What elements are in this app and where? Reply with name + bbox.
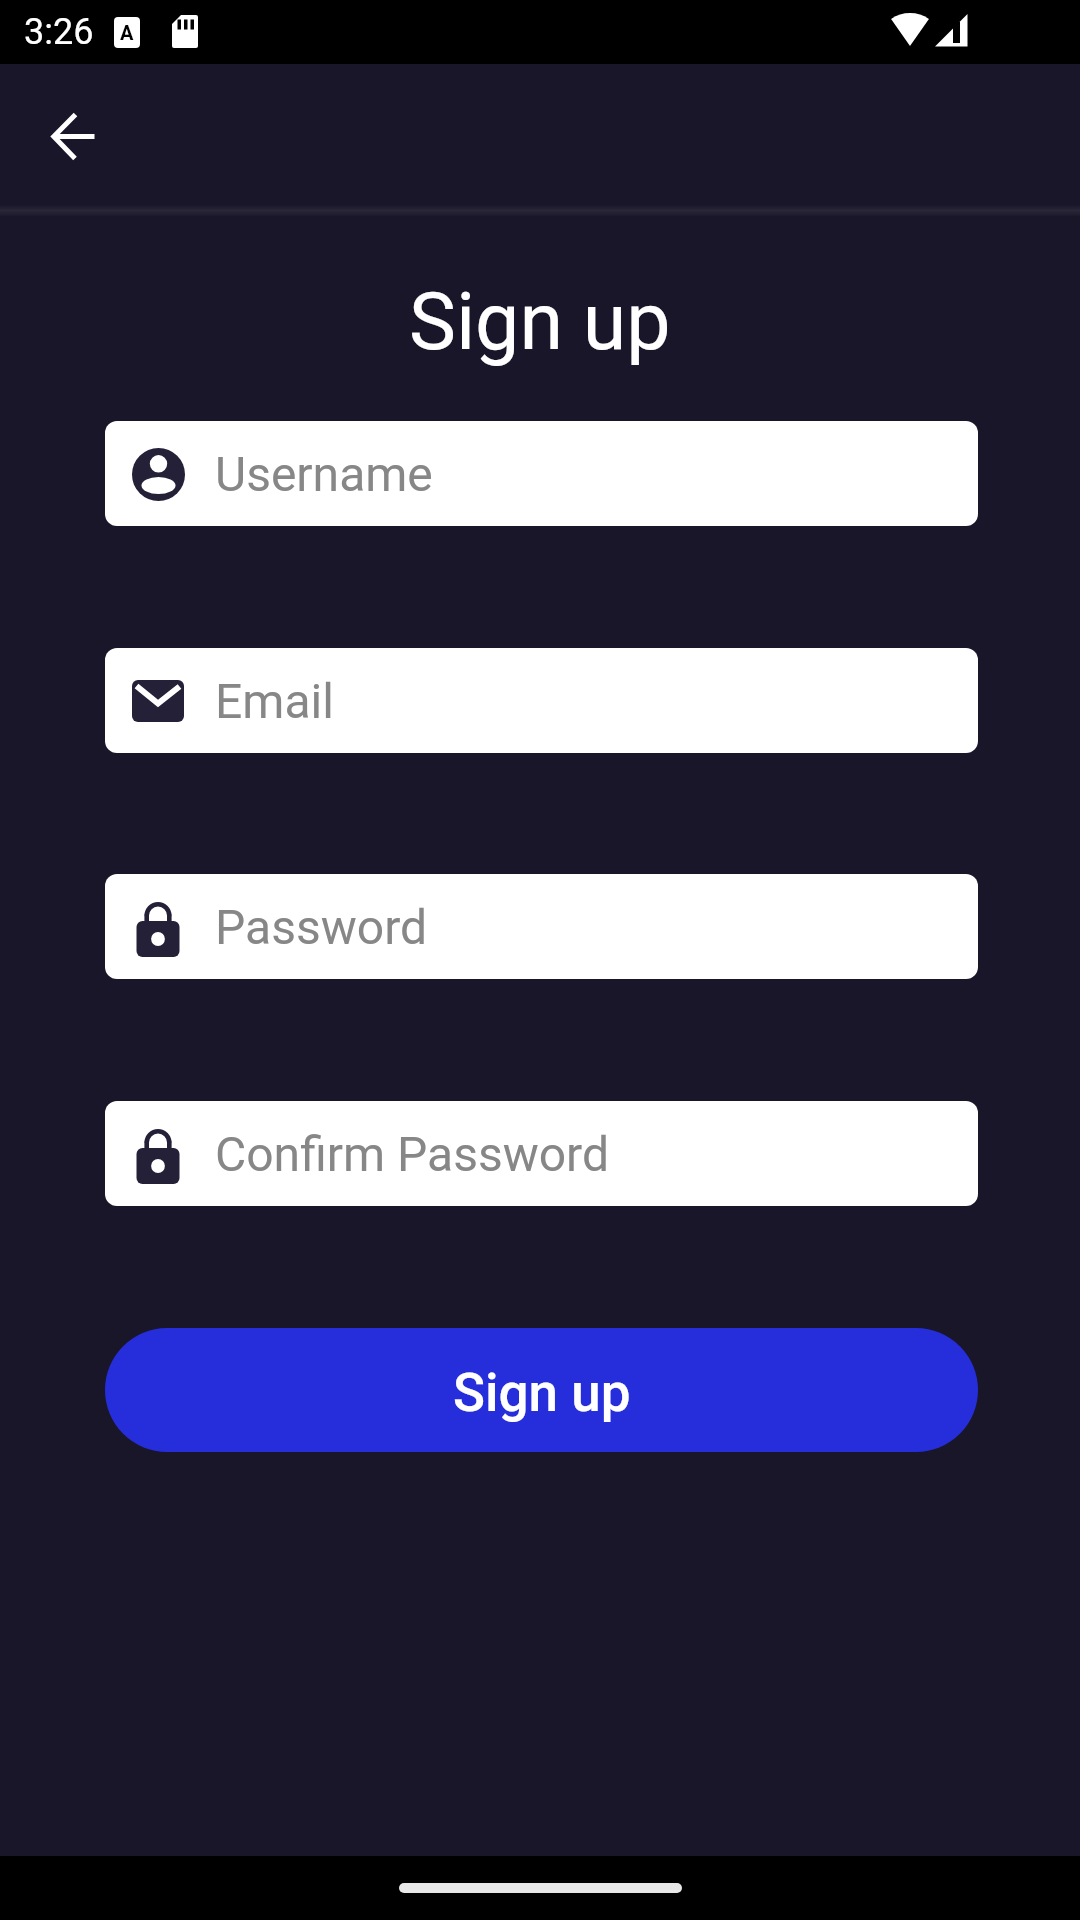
staticText: Sign up — [409, 276, 671, 369]
button[interactable]: Username — [105, 421, 978, 526]
staticText: Email — [215, 673, 334, 729]
button[interactable]: Confirm Password — [105, 1101, 978, 1206]
button[interactable]: Email — [105, 648, 978, 753]
staticText: Confirm Password — [215, 1126, 610, 1182]
staticText: Sign up — [453, 1362, 631, 1424]
staticText: Password — [215, 899, 428, 955]
staticText: A — [120, 21, 134, 44]
button[interactable]: Sign up — [105, 1328, 978, 1452]
staticText: 3:26 — [24, 11, 94, 53]
staticText: Username — [215, 446, 433, 502]
button[interactable]: Password — [105, 874, 978, 979]
button[interactable] — [30, 92, 118, 180]
